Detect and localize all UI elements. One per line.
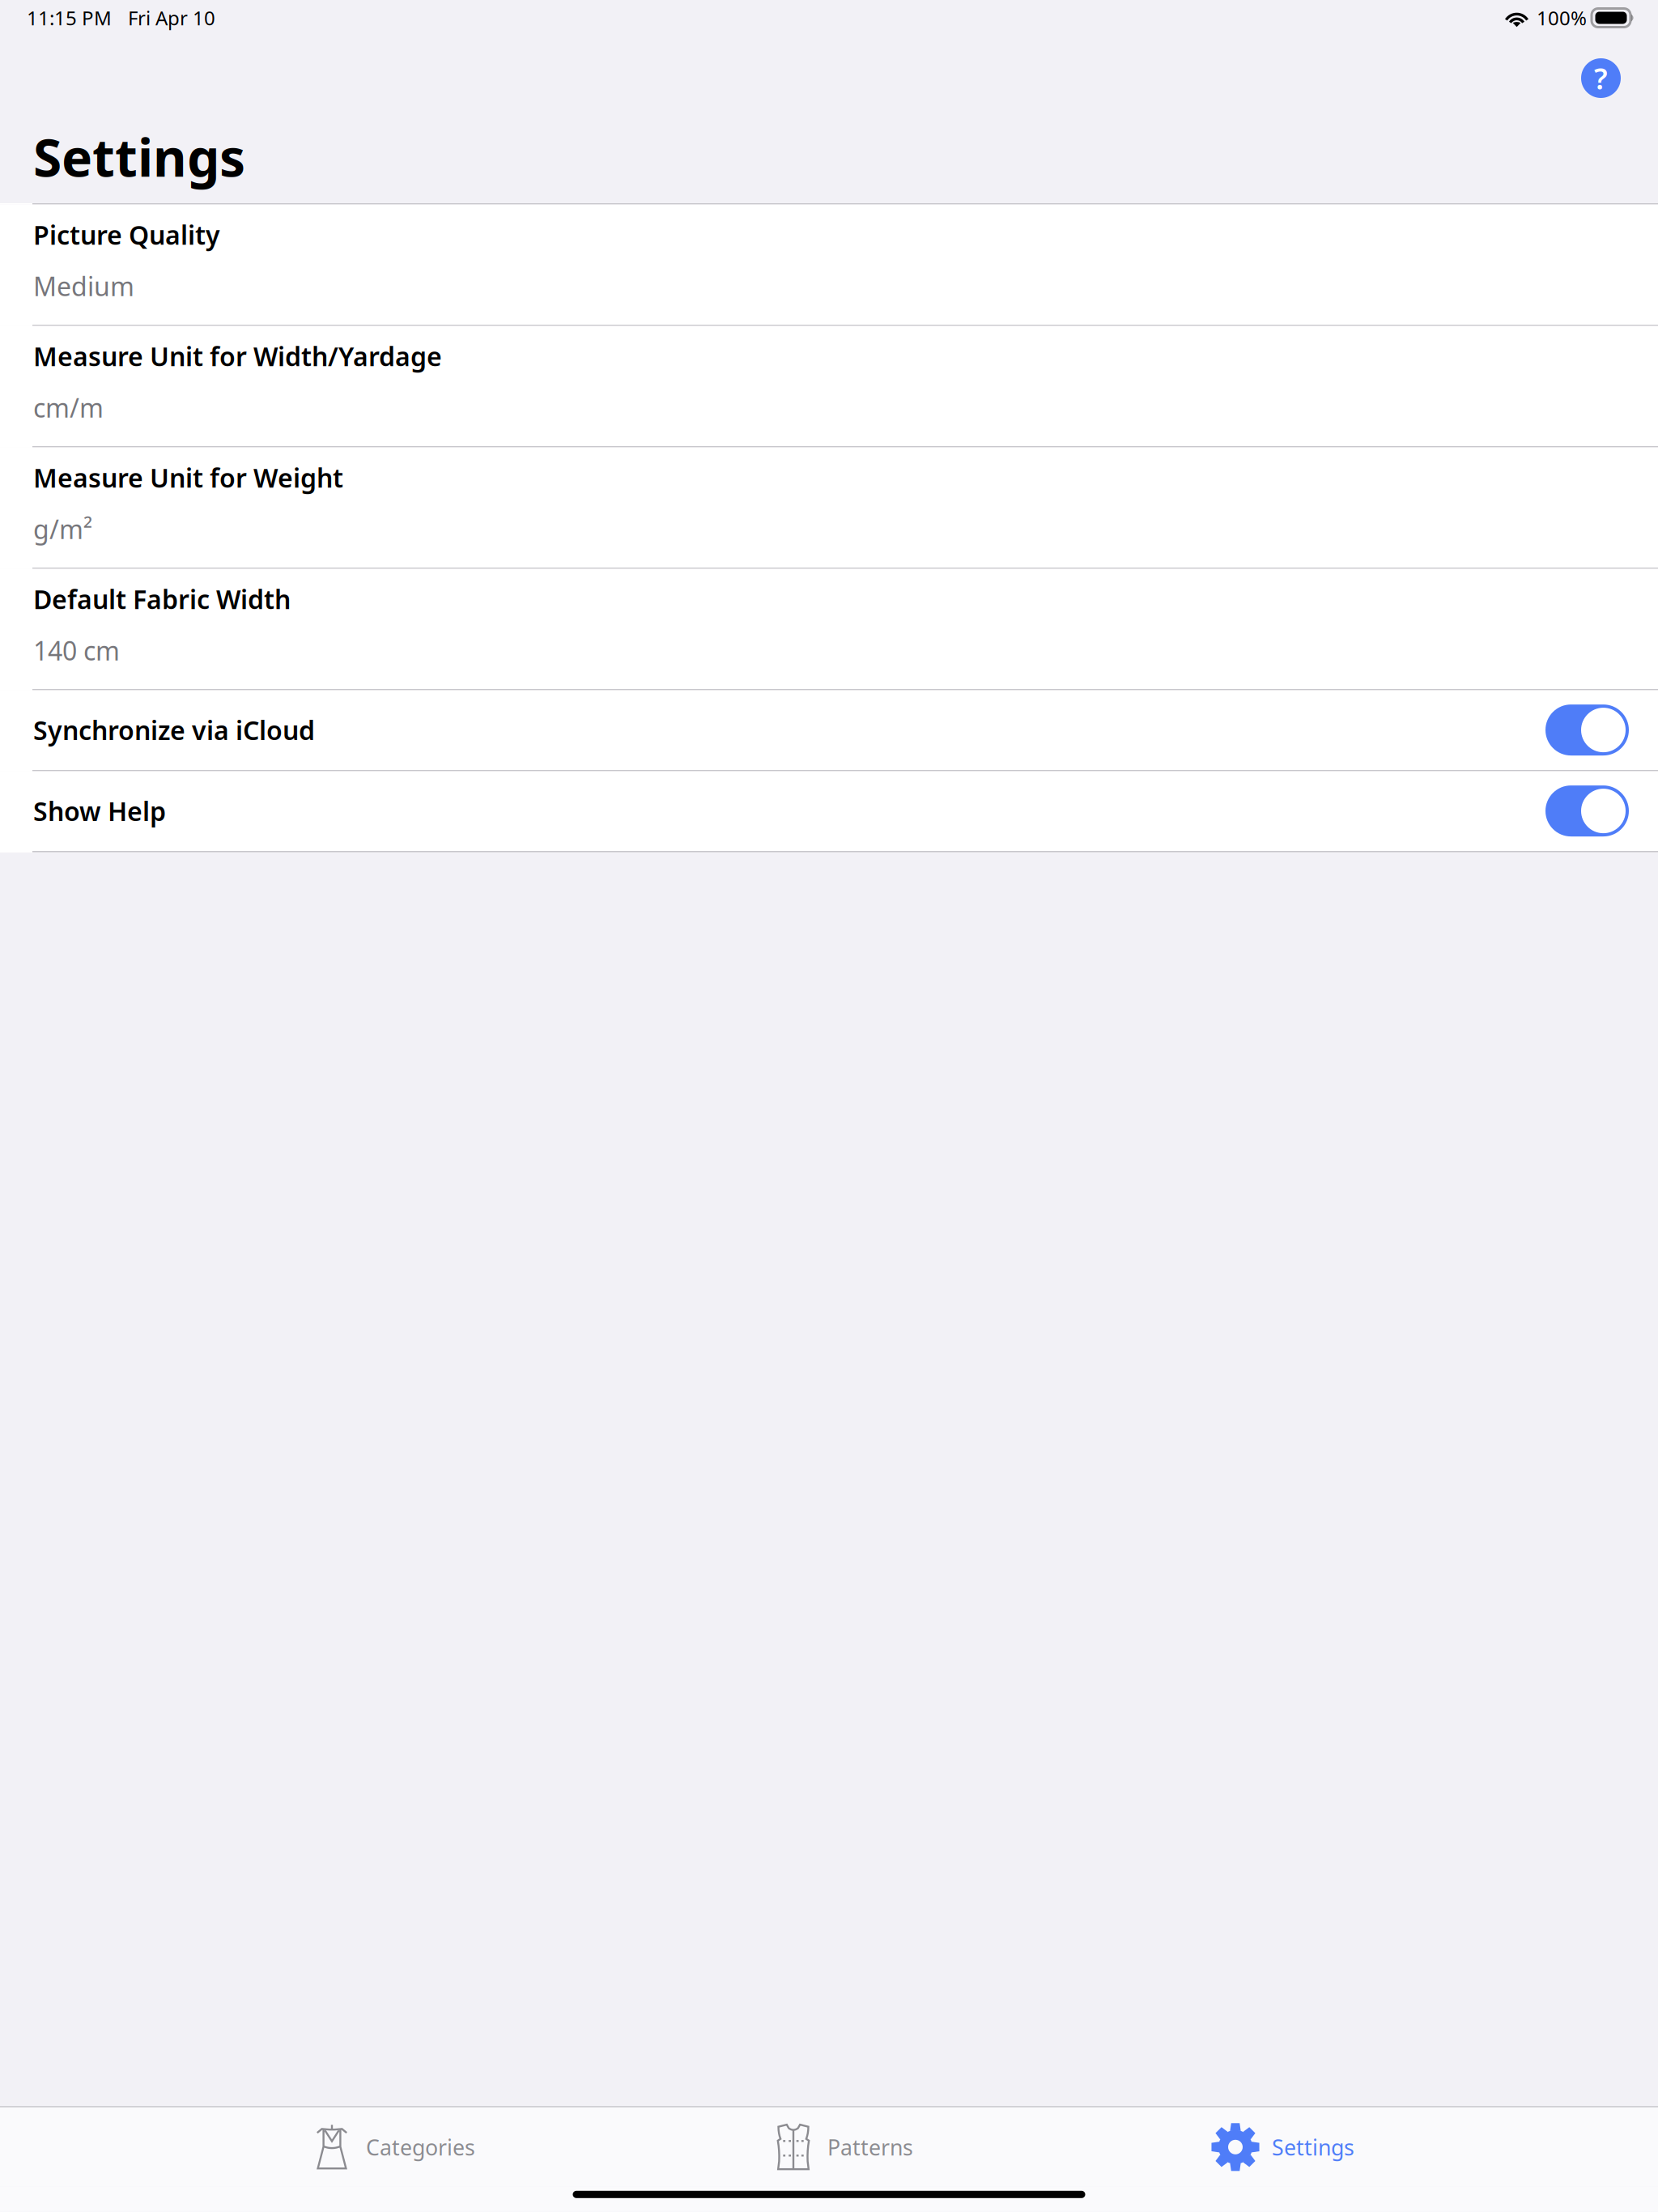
- staticText: Picture Quality: [33, 217, 220, 252]
- button[interactable]: Synchronize via iCloud: [0, 690, 1658, 771]
- staticText: 140 cm: [33, 633, 120, 668]
- staticText: Synchronize via iCloud: [33, 713, 315, 747]
- staticText: cm/m: [33, 390, 104, 425]
- button[interactable]: Help: [1581, 58, 1621, 98]
- staticText: g/m²: [33, 512, 92, 546]
- staticText: Measure Unit for Width/Yardage: [33, 339, 442, 373]
- staticText: Patterns: [827, 2133, 913, 2161]
- staticText: Fri Apr 10: [128, 5, 215, 31]
- button[interactable]: Patterns: [777, 2107, 913, 2187]
- staticText: ?: [1594, 59, 1608, 97]
- staticText: Default Fabric Width: [33, 582, 291, 616]
- button[interactable]: Measure Unit for Width/Yardage: [0, 326, 1658, 447]
- staticText: Medium: [33, 269, 134, 303]
- staticText: Settings: [1272, 2133, 1354, 2161]
- button[interactable]: Picture Quality: [0, 205, 1658, 326]
- staticText: Measure Unit for Weight: [33, 460, 343, 495]
- button[interactable]: Default Fabric Width: [0, 569, 1658, 690]
- button[interactable]: Measure Unit for Weight: [0, 447, 1658, 569]
- staticText: Categories: [366, 2133, 475, 2161]
- button[interactable]: Categories: [317, 2107, 475, 2187]
- button[interactable]: Show Help: [0, 771, 1658, 852]
- staticText: 11:15 PM: [27, 5, 112, 31]
- staticText: Show Help: [33, 794, 166, 828]
- button[interactable]: Settings: [1211, 2107, 1354, 2187]
- staticText: 100%: [1537, 5, 1587, 31]
- staticText: Settings: [33, 122, 245, 191]
